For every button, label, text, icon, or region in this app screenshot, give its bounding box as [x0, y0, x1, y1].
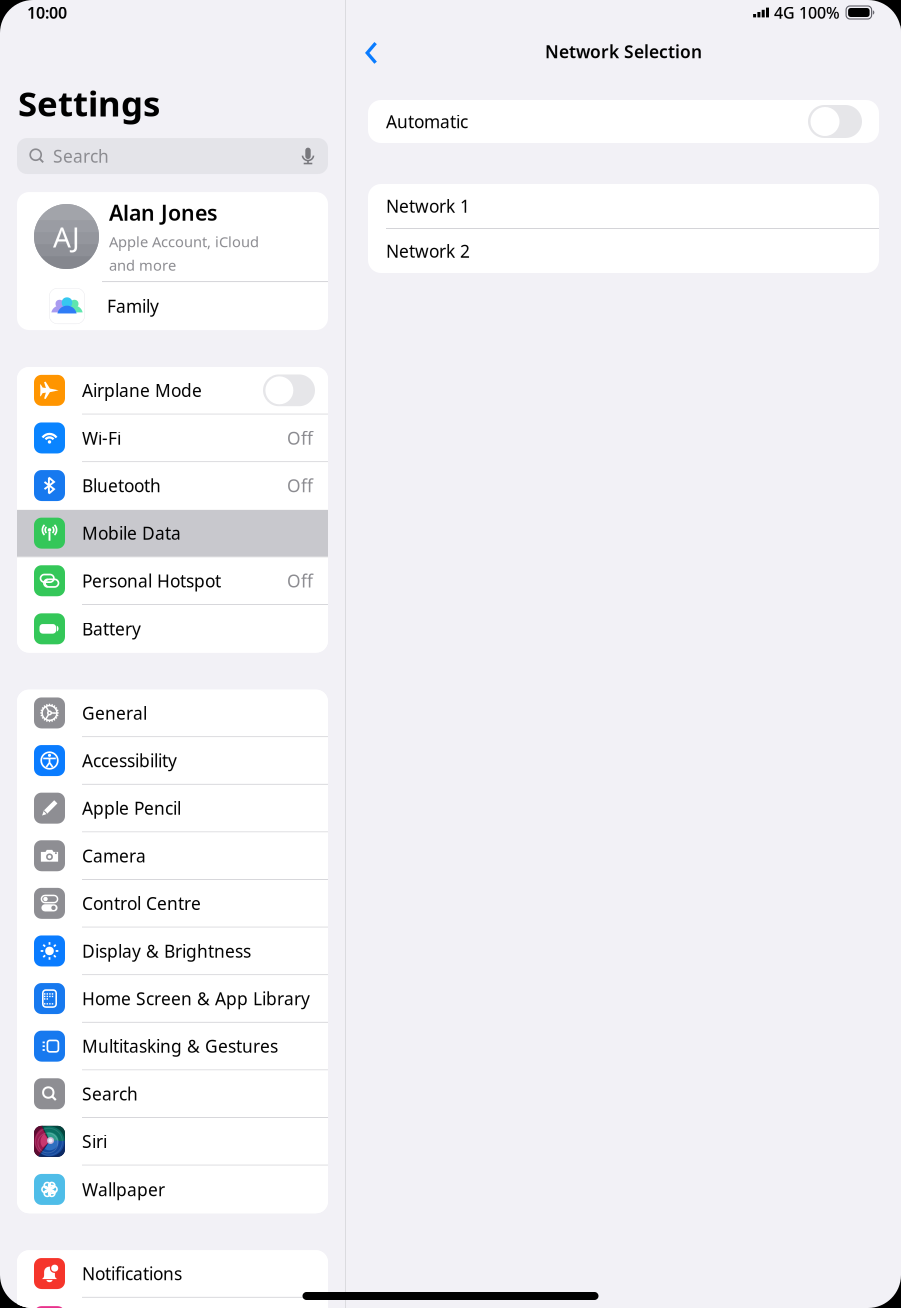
- button[interactable]: Siri: [17, 1118, 328, 1165]
- button[interactable]: Battery: [17, 605, 328, 653]
- button[interactable]: Network 1: [368, 184, 879, 228]
- staticText: Notifications: [82, 1262, 182, 1285]
- button[interactable]: Search: [17, 1070, 328, 1117]
- staticText: Search: [82, 1082, 138, 1105]
- button[interactable]: Sounds: [17, 1298, 328, 1308]
- staticText: Search: [53, 144, 109, 167]
- staticText: Apple Account, iCloud: [109, 232, 259, 251]
- staticText: Multitasking & Gestures: [82, 1035, 278, 1058]
- button[interactable]: Family: [17, 282, 328, 330]
- button[interactable]: Multitasking & Gestures: [17, 1023, 328, 1069]
- staticText: Control Centre: [82, 892, 201, 915]
- staticText: Personal Hotspot: [82, 569, 221, 592]
- staticText: Off: [287, 474, 313, 497]
- staticText: Network 2: [386, 239, 470, 262]
- staticText: Network 1: [386, 194, 470, 217]
- button[interactable]: Bluetooth: [17, 462, 328, 509]
- button[interactable]: Apple Pencil: [17, 785, 328, 831]
- staticText: and more: [109, 255, 176, 275]
- staticText: Family: [107, 294, 159, 317]
- staticText: Mobile Data: [82, 522, 181, 545]
- button[interactable]: Mobile Data: [17, 510, 328, 556]
- button[interactable]: Accessibility: [17, 737, 328, 784]
- staticText: Airplane Mode: [82, 379, 202, 402]
- staticText: Apple Pencil: [82, 797, 181, 820]
- staticText: Accessibility: [82, 749, 177, 772]
- staticText: Siri: [82, 1130, 107, 1153]
- staticText: Off: [287, 426, 313, 449]
- button[interactable]: Back: [350, 31, 394, 75]
- staticText: Camera: [82, 844, 146, 867]
- button[interactable]: Home Screen & App Library: [17, 975, 328, 1022]
- button[interactable]: Camera: [17, 832, 328, 879]
- staticText: Network Selection: [545, 40, 702, 63]
- button[interactable]: Automatic: [368, 100, 879, 143]
- staticText: Home Screen & App Library: [82, 987, 310, 1010]
- button[interactable]: Notifications: [17, 1250, 328, 1297]
- staticText: 4G 100%: [774, 2, 840, 23]
- button[interactable]: Voice search: [298, 145, 328, 167]
- staticText: Wi-Fi: [82, 426, 121, 449]
- button[interactable]: Airplane Mode: [17, 367, 328, 414]
- staticText: Bluetooth: [82, 474, 161, 497]
- staticText: Wallpaper: [82, 1178, 165, 1201]
- button[interactable]: Network 2: [368, 229, 879, 273]
- staticText: Automatic: [386, 110, 468, 133]
- button[interactable]: Control Centre: [17, 880, 328, 927]
- button[interactable]: Wi-Fi: [17, 415, 328, 461]
- button[interactable]: AJ: [17, 192, 328, 281]
- staticText: Display & Brightness: [82, 939, 251, 962]
- button[interactable]: Personal Hotspot: [17, 557, 328, 604]
- button[interactable]: Wallpaper: [17, 1166, 328, 1213]
- staticText: Alan Jones: [109, 198, 218, 227]
- button[interactable]: Display & Brightness: [17, 928, 328, 974]
- staticText: AJ: [53, 218, 80, 255]
- staticText: Settings: [18, 80, 160, 126]
- button[interactable]: General: [17, 690, 328, 736]
- staticText: 10:00: [27, 2, 67, 23]
- staticText: General: [82, 701, 147, 724]
- staticText: Off: [287, 569, 313, 592]
- staticText: Battery: [82, 617, 141, 640]
